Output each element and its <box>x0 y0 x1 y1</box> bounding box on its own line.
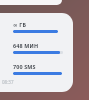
staticText: 08:37 <box>2 79 14 85</box>
staticText: 700 SMS <box>13 63 36 70</box>
button[interactable]: ∞ ГБ <box>0 20 73 34</box>
staticText: ∞ ГБ <box>13 21 27 28</box>
button[interactable]: 648 МИН <box>0 41 73 55</box>
button[interactable]: 700 SMS <box>0 62 73 76</box>
button[interactable]: ∞ ГБ <box>0 13 73 92</box>
button[interactable]: Header <box>0 0 62 5</box>
staticText: 648 МИН <box>13 42 39 49</box>
